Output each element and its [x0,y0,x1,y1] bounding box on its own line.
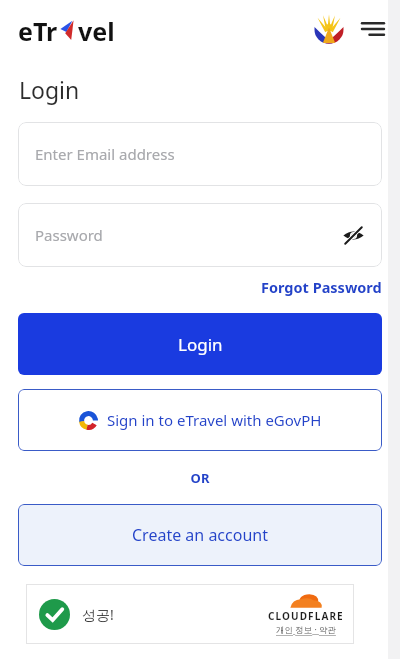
button[interactable]: 성공! [26,584,354,644]
staticText: CLOUDFLARE [268,609,344,623]
button[interactable]: Enter Email address [18,122,382,186]
button[interactable]: Create an account [18,504,382,566]
staticText: eTr [18,14,58,44]
staticText: Create an account [132,524,268,546]
staticText: Forgot Password [261,277,382,297]
button[interactable]: Menu [358,14,388,44]
staticText: OR [0,469,400,487]
button[interactable]: Password [18,203,382,267]
staticText: 개인 정보 · 약관 [276,624,336,636]
staticText: Login [178,333,223,356]
button[interactable]: Show password [338,220,368,250]
button[interactable]: Sign in to eTravel with eGovPH [18,389,382,451]
button[interactable]: Login [18,313,382,375]
staticText: vel [78,14,115,44]
button[interactable]: Philippine Government Seal [312,12,346,46]
staticText: Enter Email address [35,144,175,164]
staticText: Password [35,225,103,245]
staticText: Sign in to eTravel with eGovPH [107,410,322,430]
staticText: Login [19,74,80,105]
staticText: 성공! [82,605,114,624]
button[interactable]: Forgot Password [261,277,382,297]
button[interactable]: eTr [18,14,136,44]
